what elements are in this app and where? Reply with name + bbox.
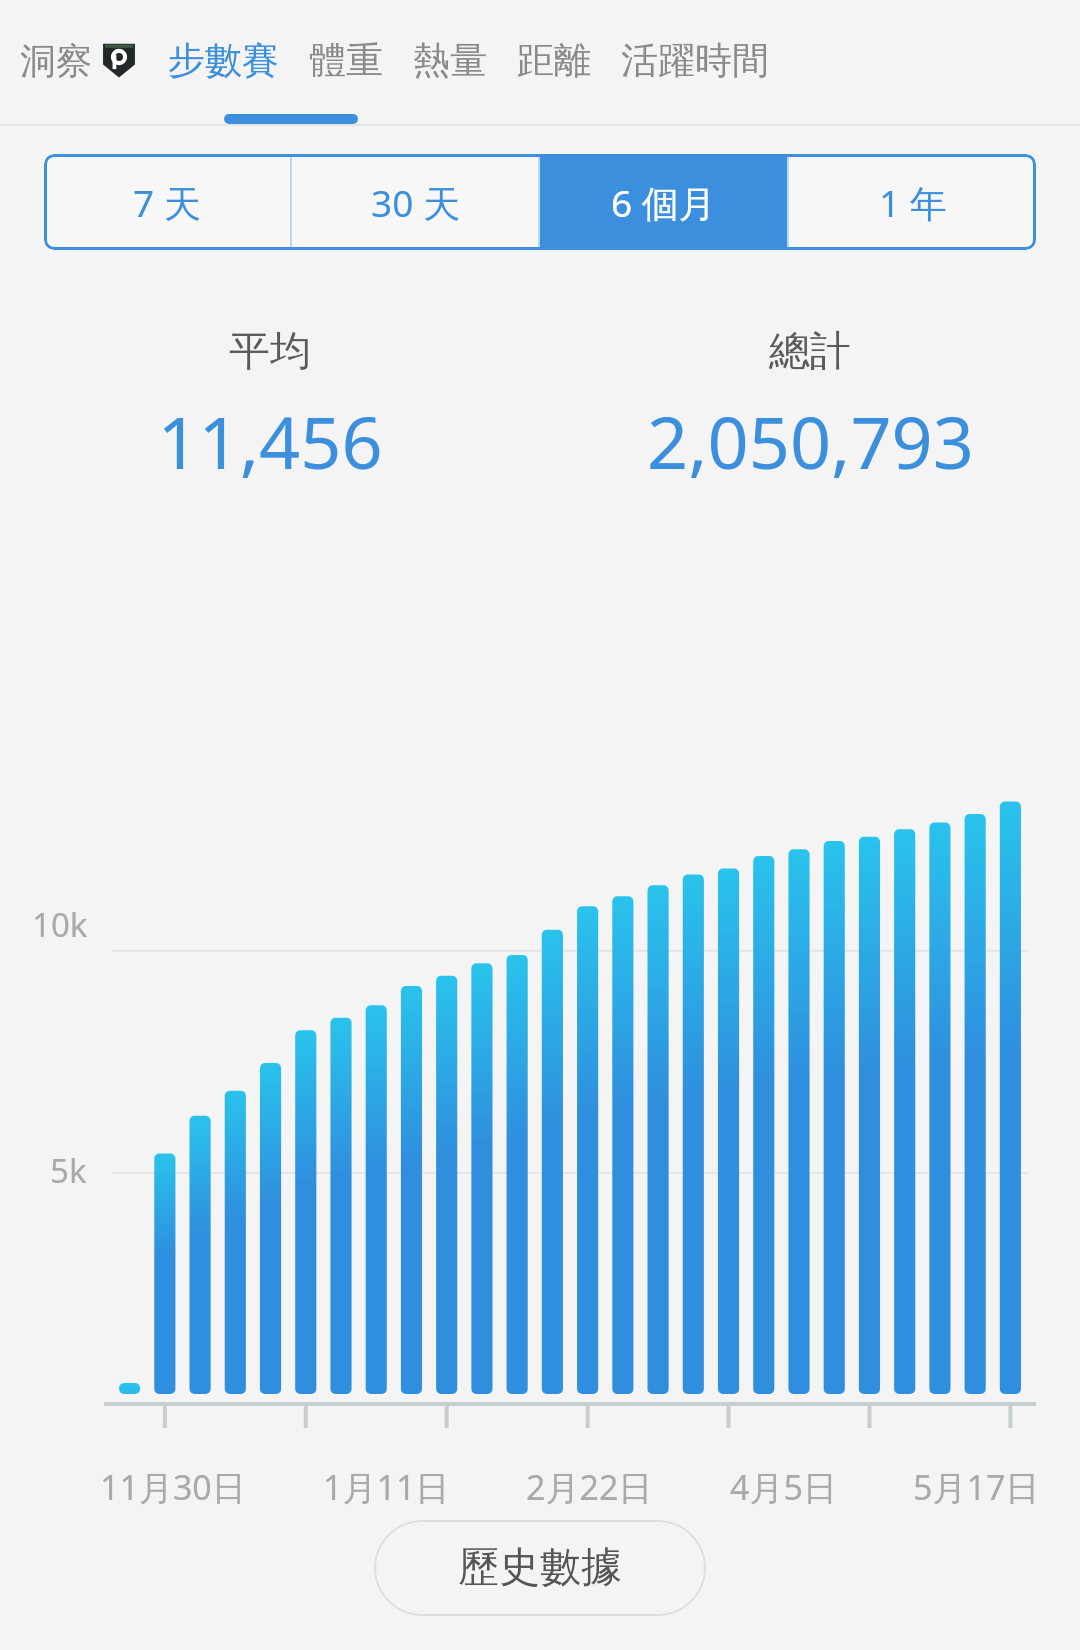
button[interactable]: 歷史數據 <box>374 1520 706 1616</box>
staticText: 7 天 <box>133 177 201 228</box>
button[interactable]: 活躍時間 <box>621 0 769 120</box>
staticText: 30 天 <box>371 177 460 228</box>
staticText: 4月5日 <box>730 1464 837 1510</box>
staticText: 5k <box>50 1148 87 1193</box>
staticText: 熱量 <box>413 37 487 84</box>
staticText: 5月17日 <box>913 1464 1040 1510</box>
staticText: 總計 <box>769 326 851 378</box>
staticText: 步數賽 <box>168 37 279 84</box>
button[interactable]: 6 個月 <box>540 154 787 250</box>
button[interactable]: 7 天 <box>44 154 290 250</box>
staticText: 11,456 <box>157 392 383 490</box>
staticText: 歷史數據 <box>458 1542 622 1594</box>
staticText: 活躍時間 <box>621 37 769 84</box>
staticText: 11月30日 <box>100 1464 246 1510</box>
staticText: 平均 <box>229 326 311 378</box>
staticText: 2月22日 <box>526 1464 653 1510</box>
staticText: 1 年 <box>879 177 947 228</box>
staticText: 2,050,793 <box>647 392 974 490</box>
button[interactable]: 步數賽 <box>168 0 279 120</box>
button[interactable]: 熱量 <box>413 0 487 120</box>
button[interactable]: 1 年 <box>789 154 1036 250</box>
button[interactable]: 30 天 <box>292 154 538 250</box>
button[interactable]: 洞察 <box>20 0 138 120</box>
staticText: 6 個月 <box>611 177 716 228</box>
staticText: 體重 <box>309 37 383 84</box>
button[interactable]: 距離 <box>517 0 591 120</box>
staticText: 洞察 <box>20 38 92 83</box>
staticText: 1月11日 <box>323 1464 450 1510</box>
staticText: 10k <box>32 902 88 947</box>
staticText: 距離 <box>517 37 591 84</box>
button[interactable]: 體重 <box>309 0 383 120</box>
